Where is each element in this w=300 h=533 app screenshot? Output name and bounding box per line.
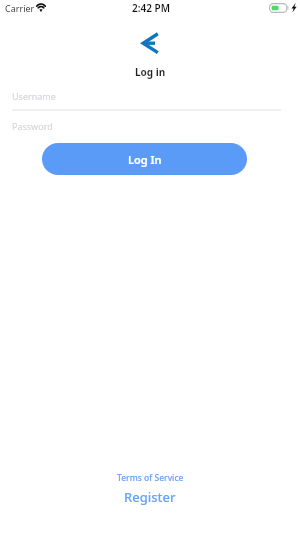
button[interactable]: Register — [0, 487, 300, 507]
staticText: Register — [124, 488, 176, 506]
staticText: Log In — [128, 152, 162, 167]
staticText: Log in — [135, 65, 166, 79]
button[interactable]: Terms of Service — [0, 471, 300, 485]
other: Wi-Fi — [36, 4, 46, 12]
button[interactable]: Back — [136, 28, 164, 58]
staticText: 2:42 PM — [132, 1, 170, 15]
button[interactable]: Username — [12, 86, 281, 110]
staticText: Username — [12, 90, 56, 102]
button[interactable]: Password — [12, 116, 281, 140]
button[interactable]: Log In — [42, 143, 247, 175]
other: Battery charging — [269, 3, 292, 13]
staticText: Terms of Service — [117, 472, 184, 484]
staticText: Password — [12, 120, 53, 132]
staticText: Carrier — [5, 2, 35, 14]
